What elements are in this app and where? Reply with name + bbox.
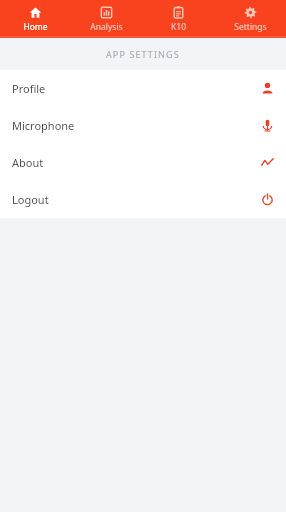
button[interactable]: K10 <box>142 3 214 33</box>
staticText: APP SETTINGS <box>106 48 180 60</box>
staticText: Microphone <box>12 118 75 133</box>
staticText: About <box>12 155 44 170</box>
button[interactable]: Home <box>0 3 71 33</box>
button[interactable]: Profile <box>0 70 286 107</box>
staticText: Settings <box>234 21 267 33</box>
button[interactable]: About <box>0 144 286 181</box>
staticText: K10 <box>171 21 186 33</box>
staticText: Logout <box>12 192 49 207</box>
staticText: Analysis <box>90 21 123 33</box>
button[interactable]: Analysis <box>71 3 142 33</box>
staticText: Profile <box>12 81 46 96</box>
button[interactable]: Settings <box>214 3 286 33</box>
staticText: Home <box>23 21 48 33</box>
button[interactable]: Logout <box>0 181 286 218</box>
button[interactable]: Microphone <box>0 107 286 144</box>
